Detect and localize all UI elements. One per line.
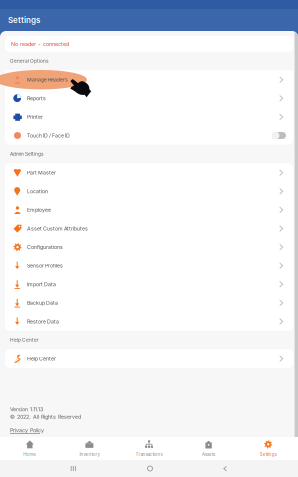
staticText: Home: [23, 452, 36, 457]
staticText: Touch ID / Face ID: [27, 132, 70, 139]
button[interactable]: Help Center: [5, 349, 293, 368]
staticText: Privacy Policy: [10, 427, 44, 433]
staticText: Asset Custom Attributes: [27, 225, 88, 232]
staticText: © 2022. All Rights Reserved: [10, 413, 81, 420]
staticText: Employee: [27, 207, 51, 213]
button[interactable]: Assets: [179, 437, 238, 460]
staticText: Backup Data: [27, 300, 58, 306]
button[interactable]: Privacy Policy: [10, 420, 298, 434]
staticText: Settings: [260, 452, 277, 457]
button[interactable]: Sensor Profiles: [5, 256, 293, 275]
button[interactable]: Printer: [5, 108, 293, 126]
staticText: Sensor Profiles: [27, 263, 63, 269]
staticText: Manage Readers: [27, 77, 68, 83]
staticText: Admin Settings: [10, 151, 44, 157]
button[interactable]: Home: [0, 437, 60, 460]
staticText: Help Center: [27, 356, 56, 362]
button[interactable]: Employee: [5, 201, 293, 219]
staticText: Part Master: [27, 170, 56, 176]
button[interactable]: Asset Custom Attributes: [5, 219, 293, 238]
button[interactable]: Restore Data: [5, 312, 293, 331]
staticText: Printer: [27, 114, 43, 120]
staticText: General Options: [10, 58, 49, 64]
staticText: Restore Data: [27, 318, 59, 325]
staticText: Reports: [27, 95, 46, 101]
button[interactable]: Part Master: [5, 163, 293, 182]
button[interactable]: Settings: [238, 437, 298, 460]
staticText: Configurations: [27, 244, 63, 250]
staticText: Transactions: [135, 452, 162, 457]
staticText: Inventory: [79, 452, 99, 457]
staticText: Help Center: [10, 337, 39, 343]
button[interactable]: Import Data: [5, 275, 293, 294]
staticText: Version 1.11.13: [10, 406, 43, 413]
staticText: No reader - connected: [11, 41, 69, 47]
button[interactable]: Backup Data: [5, 294, 293, 312]
staticText: Location: [27, 188, 48, 194]
button[interactable]: Reports: [5, 89, 293, 108]
button[interactable]: Inventory: [60, 437, 119, 460]
button[interactable]: Manage Readers: [5, 70, 293, 89]
staticText: Assets: [202, 452, 215, 457]
button[interactable]: Touch ID / Face ID: [272, 131, 286, 139]
button[interactable]: Location: [5, 182, 293, 201]
staticText: Import Data: [27, 281, 56, 287]
button[interactable]: Configurations: [5, 238, 293, 256]
staticText: Settings: [8, 15, 40, 25]
button[interactable]: Transactions: [119, 437, 179, 460]
